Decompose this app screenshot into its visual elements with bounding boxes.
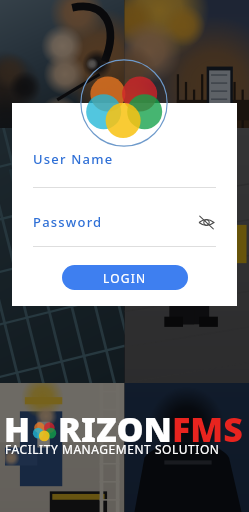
staticText: FMS [172,406,243,452]
staticText: FACILITY MANAGEMENT SOLUTION [5,441,220,457]
button[interactable]: LOGIN [62,265,188,290]
staticText: LOGIN [103,270,147,286]
button[interactable]: Show password [196,212,216,232]
staticText: RIZON [58,406,172,452]
staticText: Password [33,213,196,231]
staticText: User Name [33,150,114,168]
staticText: H [4,406,31,452]
